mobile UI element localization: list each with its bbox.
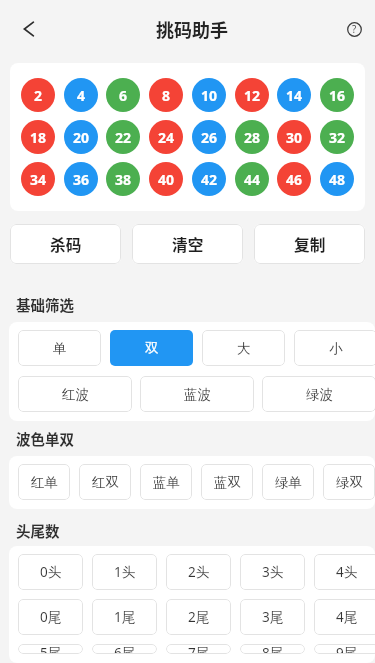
staticText: 1头 — [114, 563, 136, 581]
button[interactable]: 3头 — [240, 554, 305, 590]
button[interactable]: 蓝单 — [140, 464, 192, 500]
staticText: ? — [352, 22, 357, 36]
button[interactable]: 7尾 — [166, 644, 231, 654]
button[interactable]: Help — [335, 10, 373, 48]
button[interactable]: 大 — [202, 330, 285, 366]
button[interactable]: 4尾 — [314, 599, 375, 635]
staticText: 0头 — [40, 563, 62, 581]
staticText: 24 — [158, 128, 175, 147]
staticText: 22 — [115, 128, 132, 147]
button[interactable]: 3尾 — [240, 599, 305, 635]
button[interactable]: 28 — [235, 120, 269, 154]
button[interactable]: 2头 — [166, 554, 231, 590]
staticText: 36 — [73, 170, 90, 189]
button[interactable]: 2 — [21, 78, 55, 112]
button[interactable]: 6 — [106, 78, 140, 112]
button[interactable]: Back — [9, 9, 49, 49]
staticText: 绿波 — [306, 386, 333, 403]
staticText: 0尾 — [40, 608, 62, 626]
button[interactable]: 46 — [277, 162, 311, 196]
button[interactable]: 4头 — [314, 554, 375, 590]
staticText: 34 — [30, 170, 47, 189]
button[interactable]: 0尾 — [18, 599, 83, 635]
staticText: 波色单双 — [16, 428, 74, 447]
button[interactable]: 双 — [110, 330, 193, 366]
button[interactable]: 16 — [320, 78, 354, 112]
button[interactable]: 38 — [106, 162, 140, 196]
button[interactable]: 12 — [235, 78, 269, 112]
button[interactable]: 0头 — [18, 554, 83, 590]
staticText: 3头 — [262, 563, 284, 581]
button[interactable]: 14 — [277, 78, 311, 112]
staticText: 10 — [201, 86, 218, 105]
button[interactable]: 清空 — [132, 224, 243, 264]
button[interactable]: 杀码 — [10, 224, 121, 264]
staticText: 8 — [162, 86, 171, 105]
staticText: 20 — [73, 128, 90, 147]
button[interactable]: 6尾 — [92, 644, 157, 654]
staticText: 3尾 — [262, 608, 284, 626]
staticText: 30 — [286, 128, 303, 147]
button[interactable]: 36 — [64, 162, 98, 196]
staticText: 单 — [53, 340, 67, 357]
staticText: 红双 — [92, 474, 119, 491]
staticText: 双 — [145, 340, 159, 357]
button[interactable]: 绿单 — [262, 464, 314, 500]
button[interactable]: 8尾 — [240, 644, 305, 654]
staticText: 44 — [244, 170, 261, 189]
button[interactable]: 红波 — [18, 376, 132, 412]
button[interactable]: 绿波 — [262, 376, 375, 412]
staticText: 头尾数 — [16, 520, 60, 539]
button[interactable]: 4 — [64, 78, 98, 112]
staticText: 清空 — [172, 233, 204, 256]
staticText: 大 — [237, 340, 251, 357]
staticText: 绿单 — [275, 474, 302, 491]
staticText: 14 — [286, 86, 303, 105]
staticText: 46 — [286, 170, 303, 189]
button[interactable]: 红单 — [18, 464, 70, 500]
button[interactable]: 30 — [277, 120, 311, 154]
button[interactable]: 22 — [106, 120, 140, 154]
button[interactable]: 42 — [192, 162, 226, 196]
button[interactable]: 绿双 — [323, 464, 375, 500]
button[interactable]: 10 — [192, 78, 226, 112]
button[interactable]: 复制 — [254, 224, 365, 264]
button[interactable]: 蓝波 — [140, 376, 254, 412]
staticText: 32 — [329, 128, 346, 147]
button[interactable]: 2尾 — [166, 599, 231, 635]
staticText: 4 — [77, 86, 86, 105]
staticText: 12 — [244, 86, 261, 105]
staticText: 2头 — [188, 563, 210, 581]
staticText: 挑码助手 — [156, 16, 228, 42]
button[interactable]: 8 — [149, 78, 183, 112]
button[interactable]: 小 — [294, 330, 375, 366]
button[interactable]: 9尾 — [314, 644, 375, 654]
button[interactable]: 32 — [320, 120, 354, 154]
staticText: 蓝双 — [214, 474, 241, 491]
button[interactable]: 单 — [18, 330, 101, 366]
button[interactable]: 34 — [21, 162, 55, 196]
staticText: 48 — [329, 170, 346, 189]
button[interactable]: 48 — [320, 162, 354, 196]
staticText: 红单 — [31, 474, 58, 491]
button[interactable]: 1头 — [92, 554, 157, 590]
staticText: 26 — [201, 128, 218, 147]
staticText: 42 — [201, 170, 218, 189]
staticText: 16 — [329, 86, 346, 105]
button[interactable]: 5尾 — [18, 644, 83, 654]
button[interactable]: 24 — [149, 120, 183, 154]
staticText: 18 — [30, 128, 47, 147]
button[interactable]: 蓝双 — [201, 464, 253, 500]
button[interactable]: 1尾 — [92, 599, 157, 635]
button[interactable]: 40 — [149, 162, 183, 196]
staticText: 7尾 — [188, 644, 210, 654]
staticText: 2尾 — [188, 608, 210, 626]
staticText: 绿双 — [336, 474, 363, 491]
staticText: 复制 — [294, 233, 326, 256]
button[interactable]: 红双 — [79, 464, 131, 500]
button[interactable]: 20 — [64, 120, 98, 154]
staticText: 红波 — [62, 386, 89, 403]
button[interactable]: 18 — [21, 120, 55, 154]
button[interactable]: 44 — [235, 162, 269, 196]
button[interactable]: 26 — [192, 120, 226, 154]
